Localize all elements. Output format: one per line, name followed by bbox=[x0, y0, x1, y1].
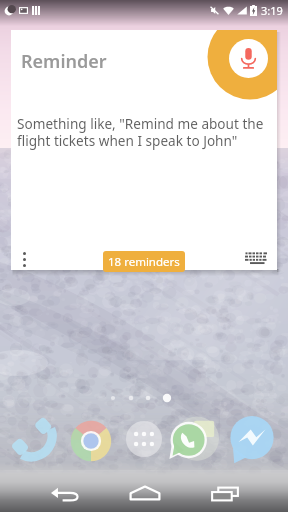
staticText: Reminder bbox=[21, 49, 107, 74]
button[interactable]: Reminder bbox=[11, 30, 277, 270]
button[interactable]: Messenger bbox=[228, 415, 276, 463]
staticText: Something like, "Remind me about the fli… bbox=[17, 114, 275, 150]
button[interactable]: Back bbox=[38, 473, 92, 512]
button[interactable]: 18 reminders bbox=[103, 251, 185, 272]
button[interactable]: Recents bbox=[198, 473, 252, 512]
button[interactable]: Keyboard bbox=[241, 247, 274, 270]
button[interactable]: Apps bbox=[120, 415, 168, 463]
button[interactable]: Phone bbox=[10, 415, 58, 463]
button[interactable]: Home bbox=[118, 472, 172, 512]
button[interactable]: Chrome bbox=[67, 417, 115, 465]
button[interactable]: WhatsApp bbox=[170, 416, 218, 464]
button[interactable]: More options bbox=[15, 247, 33, 270]
staticText: 3:19 bbox=[261, 3, 283, 18]
staticText: 18 reminders bbox=[108, 254, 180, 270]
button[interactable]: Voice input bbox=[229, 39, 268, 78]
